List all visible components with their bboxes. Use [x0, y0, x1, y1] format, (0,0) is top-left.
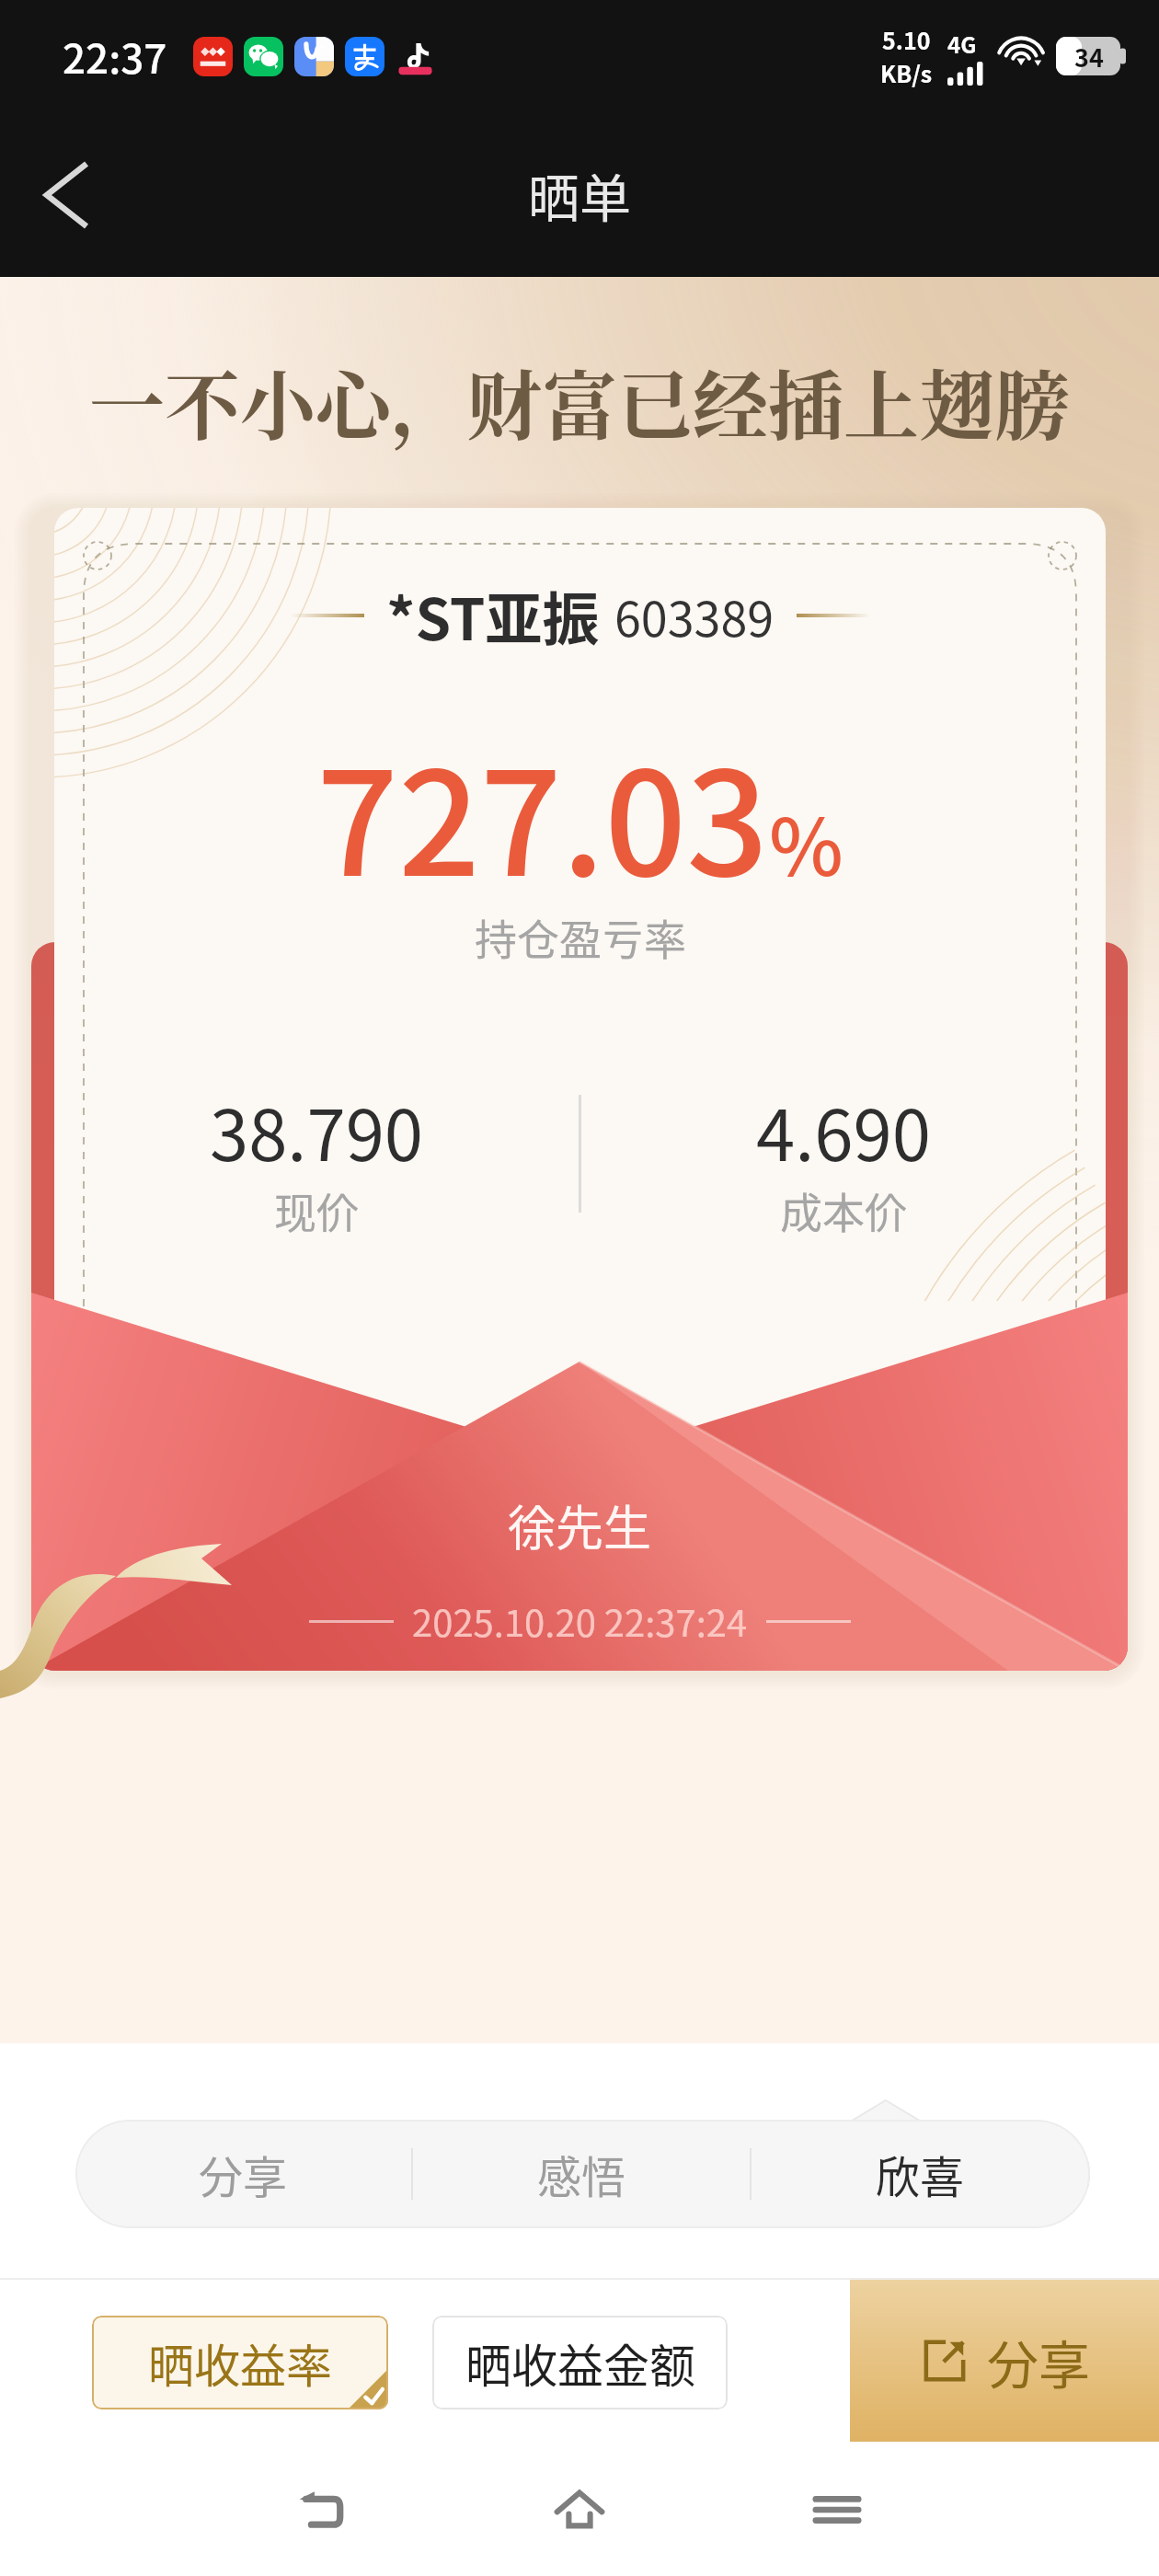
staticText: 38.790 [210, 1080, 424, 1181]
staticText: 徐先生 [508, 1490, 652, 1559]
staticText: 4G [947, 28, 977, 60]
staticText: 晒收益率 [148, 2329, 332, 2396]
staticText: 晒收益金额 [465, 2329, 695, 2396]
button[interactable]: Back [11, 140, 121, 250]
button[interactable]: 晒收益率 [92, 2316, 388, 2409]
staticText: 感悟 [537, 2142, 626, 2206]
staticText: 持仓盈亏率 [475, 906, 686, 968]
staticText: 2025.10.20 22:37:24 [412, 1594, 748, 1648]
staticText: % [769, 784, 843, 899]
staticText: 成本价 [780, 1179, 907, 1241]
staticText: 现价 [274, 1179, 359, 1241]
button[interactable]: 感悟 [413, 2120, 750, 2228]
staticText: 晒单 [528, 157, 631, 232]
staticText: 4.690 [756, 1080, 931, 1181]
staticText: 分享 [987, 2324, 1090, 2398]
staticText: 分享 [199, 2142, 288, 2206]
staticText: 727.03 [316, 709, 769, 917]
staticText: 22:37 [63, 27, 167, 86]
staticText: 一不小心，财富已经插上翅膀 [89, 347, 1071, 455]
button[interactable]: 欣喜 [752, 2120, 1088, 2228]
staticText: 34 [1074, 39, 1104, 75]
button[interactable]: Home [524, 2455, 635, 2565]
staticText: 5.10 [882, 23, 931, 56]
button[interactable]: 晒收益金额 [432, 2316, 728, 2409]
staticText: 603389 [614, 581, 775, 650]
button[interactable]: Recents [782, 2455, 892, 2565]
button[interactable]: 分享 [850, 2280, 1159, 2442]
staticText: KB/s [880, 56, 933, 89]
staticText: *ST亚振 [386, 574, 600, 657]
button[interactable]: Back [267, 2455, 377, 2565]
staticText: 欣喜 [876, 2142, 965, 2206]
button[interactable]: 分享 [75, 2120, 411, 2228]
